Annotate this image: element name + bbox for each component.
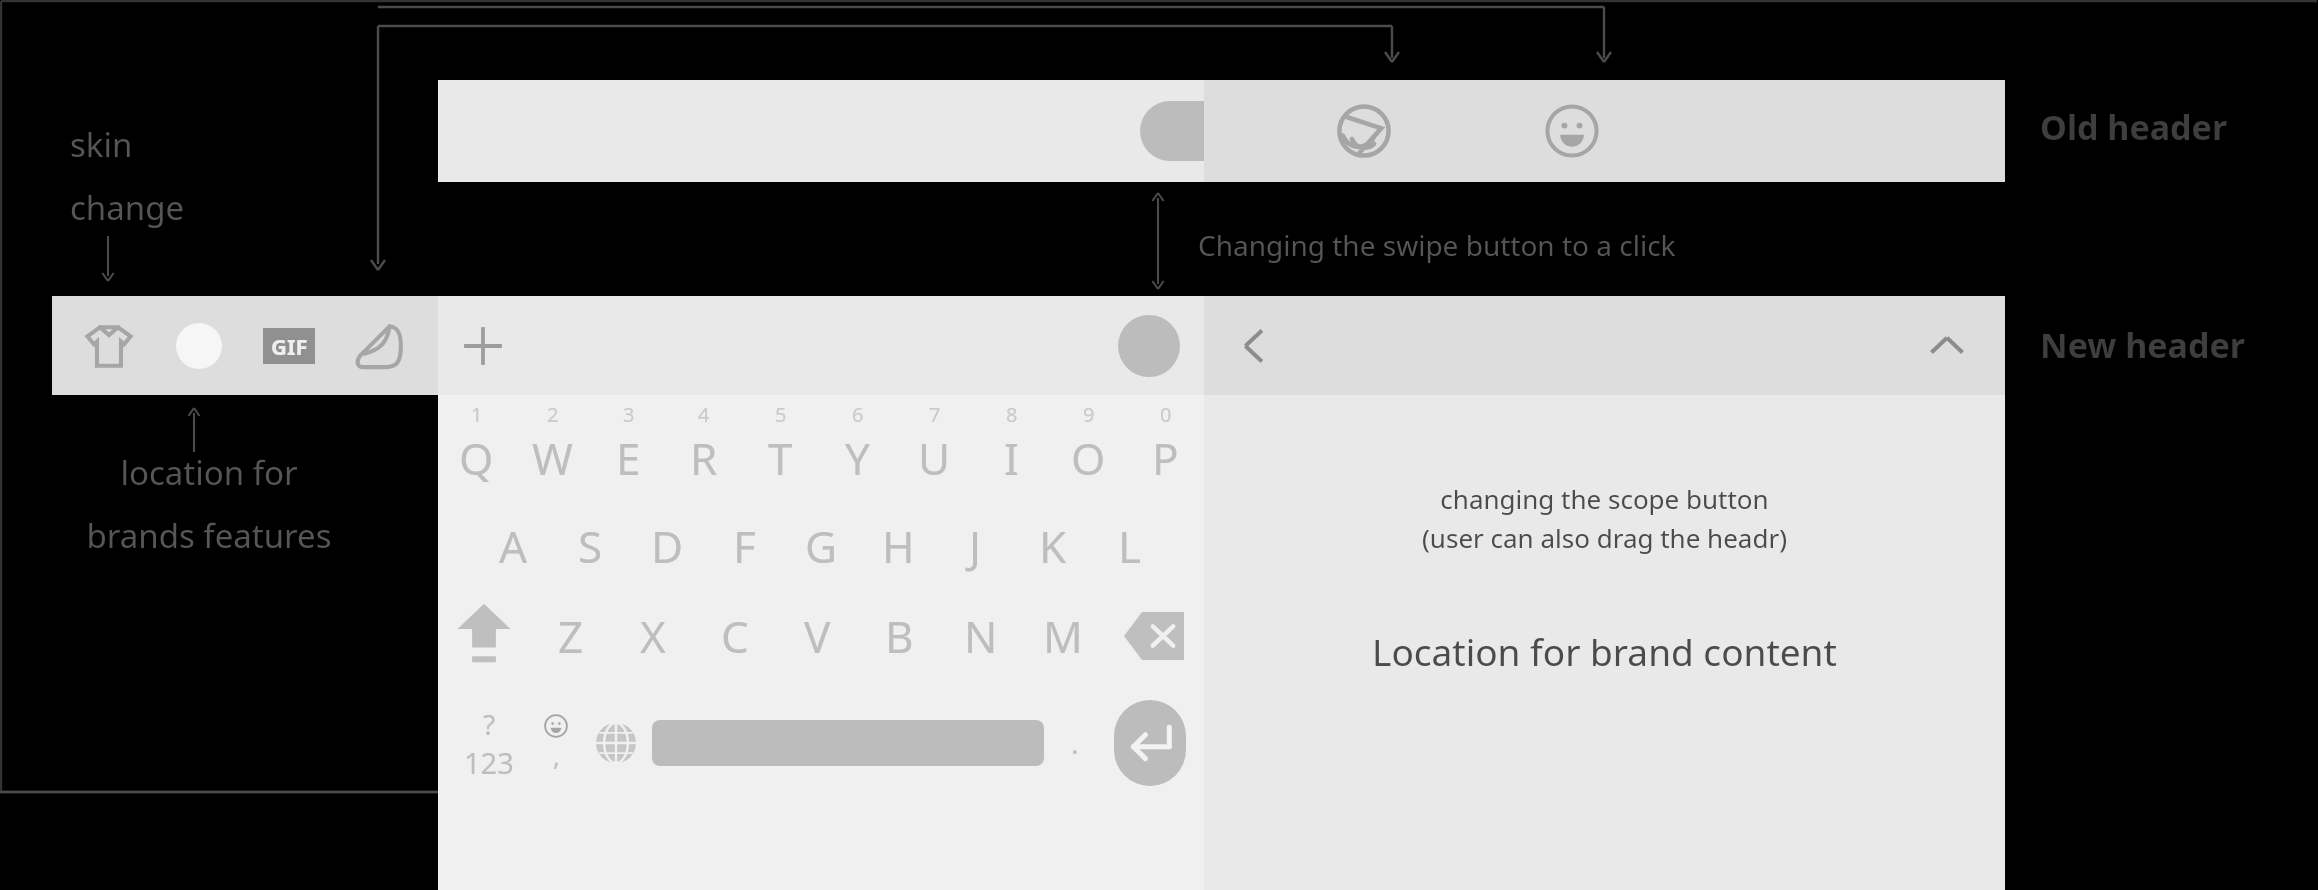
staticText: L — [1118, 516, 1142, 576]
button[interactable]: Skins — [1326, 93, 1402, 169]
button[interactable]: 8 — [973, 401, 1050, 493]
button[interactable]: Z — [530, 597, 612, 675]
button[interactable]: Swipe button — [1140, 101, 1204, 161]
staticText: C — [721, 606, 749, 666]
button[interactable]: J — [937, 515, 1014, 577]
button[interactable]: C — [694, 597, 776, 675]
button[interactable]: Emoji — [1534, 93, 1610, 169]
staticText: Z — [558, 606, 584, 666]
button[interactable]: Language — [584, 683, 648, 803]
button[interactable]: T-shirt — [64, 301, 154, 391]
button[interactable]: H — [860, 515, 937, 577]
staticText: E — [616, 428, 641, 488]
button[interactable]: ? — [450, 683, 528, 803]
button[interactable]: 4 — [666, 401, 742, 493]
staticText: location for brands features — [86, 450, 332, 557]
staticText: 8 — [1006, 401, 1018, 428]
button[interactable]: Emoji — [528, 683, 584, 803]
button[interactable]: Click button — [1118, 315, 1180, 377]
staticText: Changing the swipe button to a click — [1198, 226, 1676, 264]
button[interactable]: Backspace — [1104, 597, 1204, 675]
button[interactable]: GIF — [244, 301, 334, 391]
staticText: F — [733, 516, 756, 576]
staticText: . — [1071, 724, 1079, 762]
staticText: GIF — [271, 331, 308, 361]
staticText: ? — [483, 705, 496, 743]
staticText: D — [651, 516, 684, 576]
staticText: Location for brand content — [1372, 626, 1837, 676]
staticText: N — [964, 606, 998, 666]
staticText: M — [1043, 606, 1083, 666]
staticText: U — [918, 428, 951, 488]
staticText: Y — [845, 428, 870, 488]
staticText: 9 — [1083, 401, 1095, 428]
staticText: New header — [2040, 322, 2245, 368]
button[interactable]: F — [706, 515, 783, 577]
button[interactable]: A — [474, 515, 552, 577]
staticText: W — [532, 428, 573, 488]
button[interactable]: 0 — [1127, 401, 1204, 493]
staticText: X — [640, 606, 666, 666]
button[interactable]: Collapse — [1911, 310, 1983, 382]
button[interactable]: G — [783, 515, 860, 577]
button[interactable]: 1 — [438, 401, 514, 493]
button[interactable]: V — [776, 597, 858, 675]
button[interactable]: L — [1091, 515, 1168, 577]
staticText: 5 — [775, 401, 787, 428]
button[interactable]: 7 — [896, 401, 973, 493]
staticText: changing the scope button (user can also… — [1422, 481, 1787, 556]
button[interactable]: Shift — [438, 597, 530, 675]
staticText: 6 — [852, 401, 864, 428]
button[interactable]: Sticker — [154, 301, 244, 391]
button[interactable]: N — [940, 597, 1022, 675]
staticText: K — [1039, 516, 1067, 576]
staticText: R — [690, 428, 718, 488]
staticText: T — [768, 428, 793, 488]
button[interactable]: B — [858, 597, 940, 675]
staticText: A — [499, 516, 528, 576]
button[interactable]: 6 — [819, 401, 896, 493]
staticText: , — [553, 738, 560, 773]
button[interactable]: Brand sticker — [334, 301, 424, 391]
button[interactable]: Back — [1218, 310, 1290, 382]
button[interactable]: 9 — [1050, 401, 1127, 493]
staticText: skin change — [70, 122, 185, 229]
button[interactable]: S — [552, 515, 629, 577]
staticText: G — [805, 516, 838, 576]
staticText: V — [804, 606, 831, 666]
staticText: J — [969, 516, 982, 576]
staticText: Old header — [2040, 104, 2228, 150]
staticText: 7 — [929, 401, 941, 428]
button[interactable]: 2 — [514, 401, 590, 493]
staticText: I — [1004, 428, 1019, 488]
staticText: B — [885, 606, 914, 666]
staticText: S — [578, 516, 603, 576]
button[interactable]: X — [612, 597, 694, 675]
staticText: P — [1152, 428, 1179, 488]
staticText: 2 — [547, 401, 559, 428]
staticText: Q — [459, 428, 494, 488]
button[interactable]: D — [629, 515, 706, 577]
staticText: O — [1071, 428, 1106, 488]
staticText: 4 — [698, 401, 710, 428]
staticText: 0 — [1160, 401, 1172, 428]
staticText: 123 — [464, 743, 514, 782]
staticText: 3 — [623, 401, 635, 428]
button[interactable]: Add — [448, 311, 518, 381]
staticText: H — [882, 516, 915, 576]
button[interactable]: K — [1014, 515, 1091, 577]
button[interactable]: 3 — [590, 401, 666, 493]
button[interactable]: 5 — [742, 401, 819, 493]
button[interactable]: Enter — [1114, 700, 1186, 786]
button[interactable]: M — [1022, 597, 1104, 675]
staticText: 1 — [471, 401, 483, 428]
